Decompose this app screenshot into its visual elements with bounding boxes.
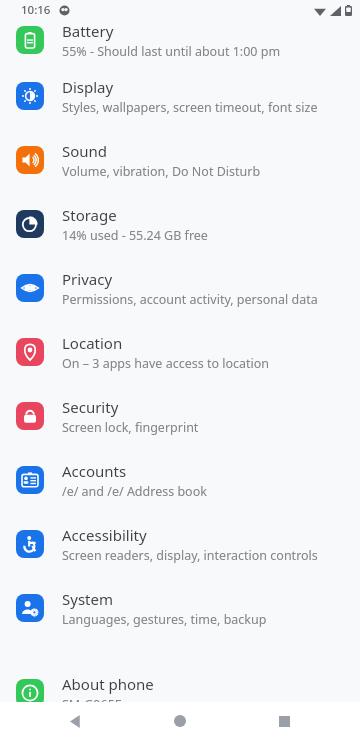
staticText: 55% - Should last until about 1:00 pm	[62, 43, 281, 60]
staticText: Privacy	[62, 269, 113, 289]
staticText: Languages, gestures, time, backup	[62, 611, 267, 628]
staticText: Styles, wallpapers, screen timeout, font…	[62, 99, 318, 116]
staticText: Screen readers, display, interaction con…	[62, 547, 318, 564]
staticText: Screen lock, fingerprint	[62, 419, 199, 436]
staticText: /e/ and /e/ Address book	[62, 483, 207, 500]
button[interactable]: Location	[0, 320, 360, 384]
staticText: Volume, vibration, Do Not Disturb	[62, 163, 261, 180]
staticText: Permissions, account activity, personal …	[62, 291, 318, 308]
staticText: Battery	[62, 21, 114, 41]
staticText: 10:16	[21, 2, 51, 18]
button[interactable]: About phone	[0, 661, 360, 725]
button[interactable]: Recent apps	[256, 702, 312, 740]
button[interactable]: Battery	[0, 8, 360, 72]
button[interactable]: Display	[0, 64, 360, 128]
staticText: About phone	[62, 674, 154, 694]
staticText: Sound	[62, 141, 108, 161]
button[interactable]: Sound	[0, 128, 360, 192]
button[interactable]: Privacy	[0, 256, 360, 320]
button[interactable]: Back	[48, 702, 104, 740]
staticText: SM-G965F	[62, 696, 122, 713]
staticText: Storage	[62, 205, 117, 225]
button[interactable]: Security	[0, 384, 360, 448]
staticText: Security	[62, 397, 119, 417]
staticText: System	[62, 589, 113, 609]
staticText: Accounts	[62, 461, 127, 481]
button[interactable]: Accounts	[0, 448, 360, 512]
staticText: Display	[62, 77, 114, 97]
button[interactable]: Home	[152, 702, 208, 740]
button[interactable]: Accessibility	[0, 512, 360, 576]
staticText: Location	[62, 333, 123, 353]
button[interactable]: Storage	[0, 192, 360, 256]
staticText: On – 3 apps have access to location	[62, 355, 270, 372]
staticText: Accessibility	[62, 525, 147, 545]
button[interactable]: System	[0, 576, 360, 640]
staticText: 14% used - 55.24 GB free	[62, 227, 208, 244]
